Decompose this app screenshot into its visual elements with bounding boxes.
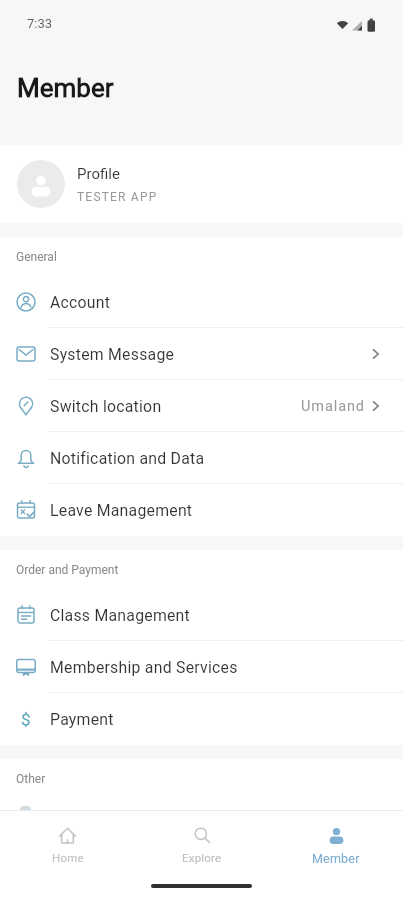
button[interactable]: System Message: [0, 328, 403, 380]
button[interactable]: Membership and Services: [0, 641, 403, 693]
button[interactable]: Leave Management: [0, 484, 403, 536]
button[interactable]: Account: [0, 276, 403, 328]
button[interactable]: Profile: [0, 145, 403, 223]
staticText: Profile: [77, 165, 120, 183]
staticText: $: [21, 709, 31, 729]
staticText: General: [16, 250, 57, 264]
button[interactable]: $: [0, 693, 403, 745]
staticText: Order and Payment: [16, 563, 119, 577]
staticText: Class Management: [50, 606, 191, 625]
staticText: Member: [312, 851, 360, 866]
button[interactable]: Switch location: [0, 380, 403, 432]
button[interactable]: Home: [0, 811, 135, 868]
staticText: Member: [17, 73, 114, 103]
button[interactable]: Notification and Data: [0, 432, 403, 484]
staticText: Notification and Data: [50, 449, 205, 468]
staticText: Other: [16, 772, 46, 786]
button[interactable]: Member: [269, 811, 403, 868]
staticText: System Message: [50, 345, 175, 364]
staticText: TESTER APP: [77, 190, 158, 204]
staticText: Home: [52, 851, 84, 864]
staticText: Leave Management: [50, 501, 193, 520]
staticText: Payment: [50, 710, 114, 729]
staticText: Umaland: [301, 398, 365, 415]
staticText: Explore: [182, 851, 222, 864]
staticText: Switch location: [50, 397, 162, 416]
button[interactable]: Explore: [135, 811, 269, 868]
staticText: 7:33: [27, 16, 53, 31]
button[interactable]: Class Management: [0, 589, 403, 641]
staticText: Membership and Services: [50, 658, 238, 677]
staticText: Account: [50, 293, 111, 312]
